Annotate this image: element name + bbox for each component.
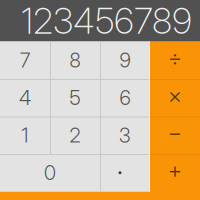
staticText: 123456789 <box>21 0 192 43</box>
button[interactable]: Add <box>150 154 200 191</box>
staticText: + <box>168 156 182 183</box>
button[interactable]: Subtract <box>150 116 200 154</box>
button[interactable]: Multiply <box>150 79 200 116</box>
staticText: 9 <box>119 48 130 72</box>
staticText: 2 <box>69 123 80 147</box>
button[interactable]: 3 <box>100 116 150 154</box>
button[interactable]: 8 <box>50 41 100 79</box>
button[interactable]: 9 <box>100 41 150 79</box>
button[interactable]: Divide <box>150 41 200 79</box>
staticText: 8 <box>69 48 80 72</box>
staticText: − <box>168 118 182 146</box>
button[interactable]: 4 <box>0 79 50 116</box>
staticText: 6 <box>119 86 130 110</box>
button[interactable]: 2 <box>50 116 100 154</box>
staticText: 0 <box>44 161 56 185</box>
staticText: 4 <box>19 86 31 110</box>
staticText: ÷ <box>168 43 182 71</box>
button[interactable]: 5 <box>50 79 100 116</box>
staticText: × <box>168 81 182 108</box>
staticText: 5 <box>69 86 80 110</box>
button[interactable]: Decimal point <box>100 154 150 191</box>
button[interactable]: 6 <box>100 79 150 116</box>
staticText: 7 <box>20 48 30 72</box>
staticText: 3 <box>119 123 131 147</box>
staticText: 1 <box>21 123 28 147</box>
button[interactable]: 1 <box>0 116 50 154</box>
button[interactable]: 7 <box>0 41 50 79</box>
button[interactable]: 0 <box>0 154 100 191</box>
